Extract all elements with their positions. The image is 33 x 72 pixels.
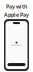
staticText: Apple Pay [4,11,29,18]
button[interactable] [7,63,25,66]
staticText: Pay with [6,3,27,10]
